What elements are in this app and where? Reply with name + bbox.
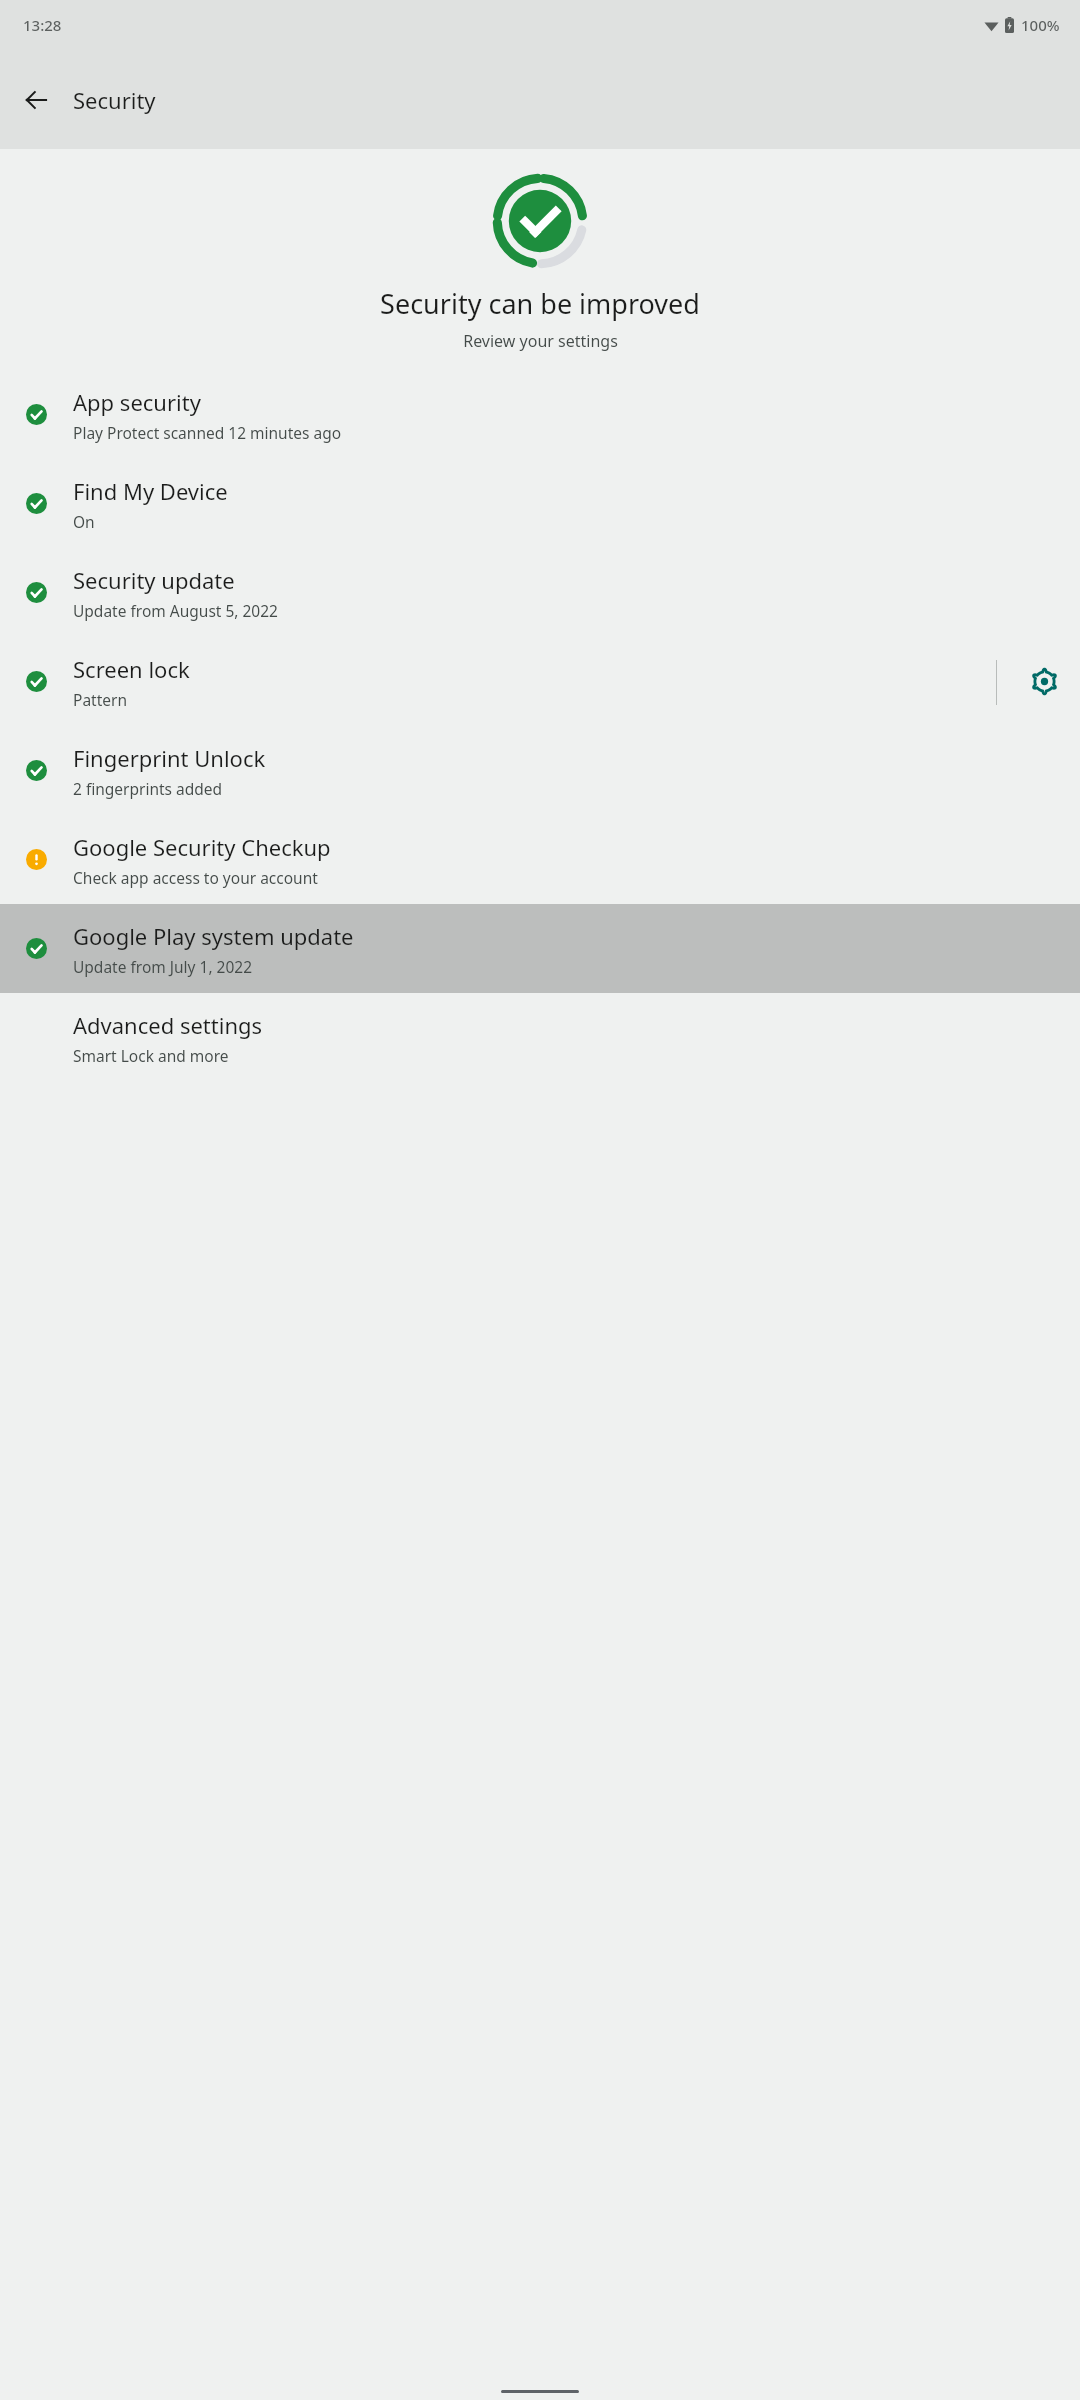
staticText: Update from August 5, 2022 — [73, 600, 278, 621]
staticText: Smart Lock and more — [73, 1045, 229, 1066]
staticText: App security — [73, 387, 201, 417]
button[interactable]: Screen lock — [0, 637, 1080, 726]
staticText: Play Protect scanned 12 minutes ago — [73, 422, 342, 443]
staticText: Update from July 1, 2022 — [73, 956, 253, 977]
staticText: Advanced settings — [73, 1010, 263, 1040]
staticText: 100% — [1021, 15, 1060, 35]
staticText: Find My Device — [73, 476, 228, 506]
staticText: Security — [73, 85, 156, 115]
staticText: Review your settings — [463, 330, 618, 352]
staticText: 13:28 — [23, 15, 62, 35]
button[interactable]: Security update — [0, 548, 1080, 637]
button[interactable]: Google Play system update — [0, 904, 1080, 993]
button[interactable]: Fingerprint Unlock — [0, 726, 1080, 815]
button[interactable]: Back — [8, 72, 64, 128]
button[interactable]: Find My Device — [0, 459, 1080, 548]
staticText: On — [73, 511, 95, 532]
staticText: Google Security Checkup — [73, 832, 331, 862]
button[interactable]: Advanced settings — [0, 993, 1080, 1082]
staticText: Security can be improved — [380, 285, 700, 322]
staticText: Fingerprint Unlock — [73, 743, 266, 773]
staticText: Security update — [73, 565, 235, 595]
button[interactable]: Google Security Checkup — [0, 815, 1080, 904]
staticText: Google Play system update — [73, 921, 354, 951]
staticText: 2 fingerprints added — [73, 778, 223, 799]
staticText: Pattern — [73, 689, 127, 710]
button[interactable]: App security — [0, 370, 1080, 459]
button[interactable]: Screen lock settings — [1008, 637, 1080, 726]
staticText: Screen lock — [73, 654, 190, 684]
staticText: Check app access to your account — [73, 867, 318, 888]
